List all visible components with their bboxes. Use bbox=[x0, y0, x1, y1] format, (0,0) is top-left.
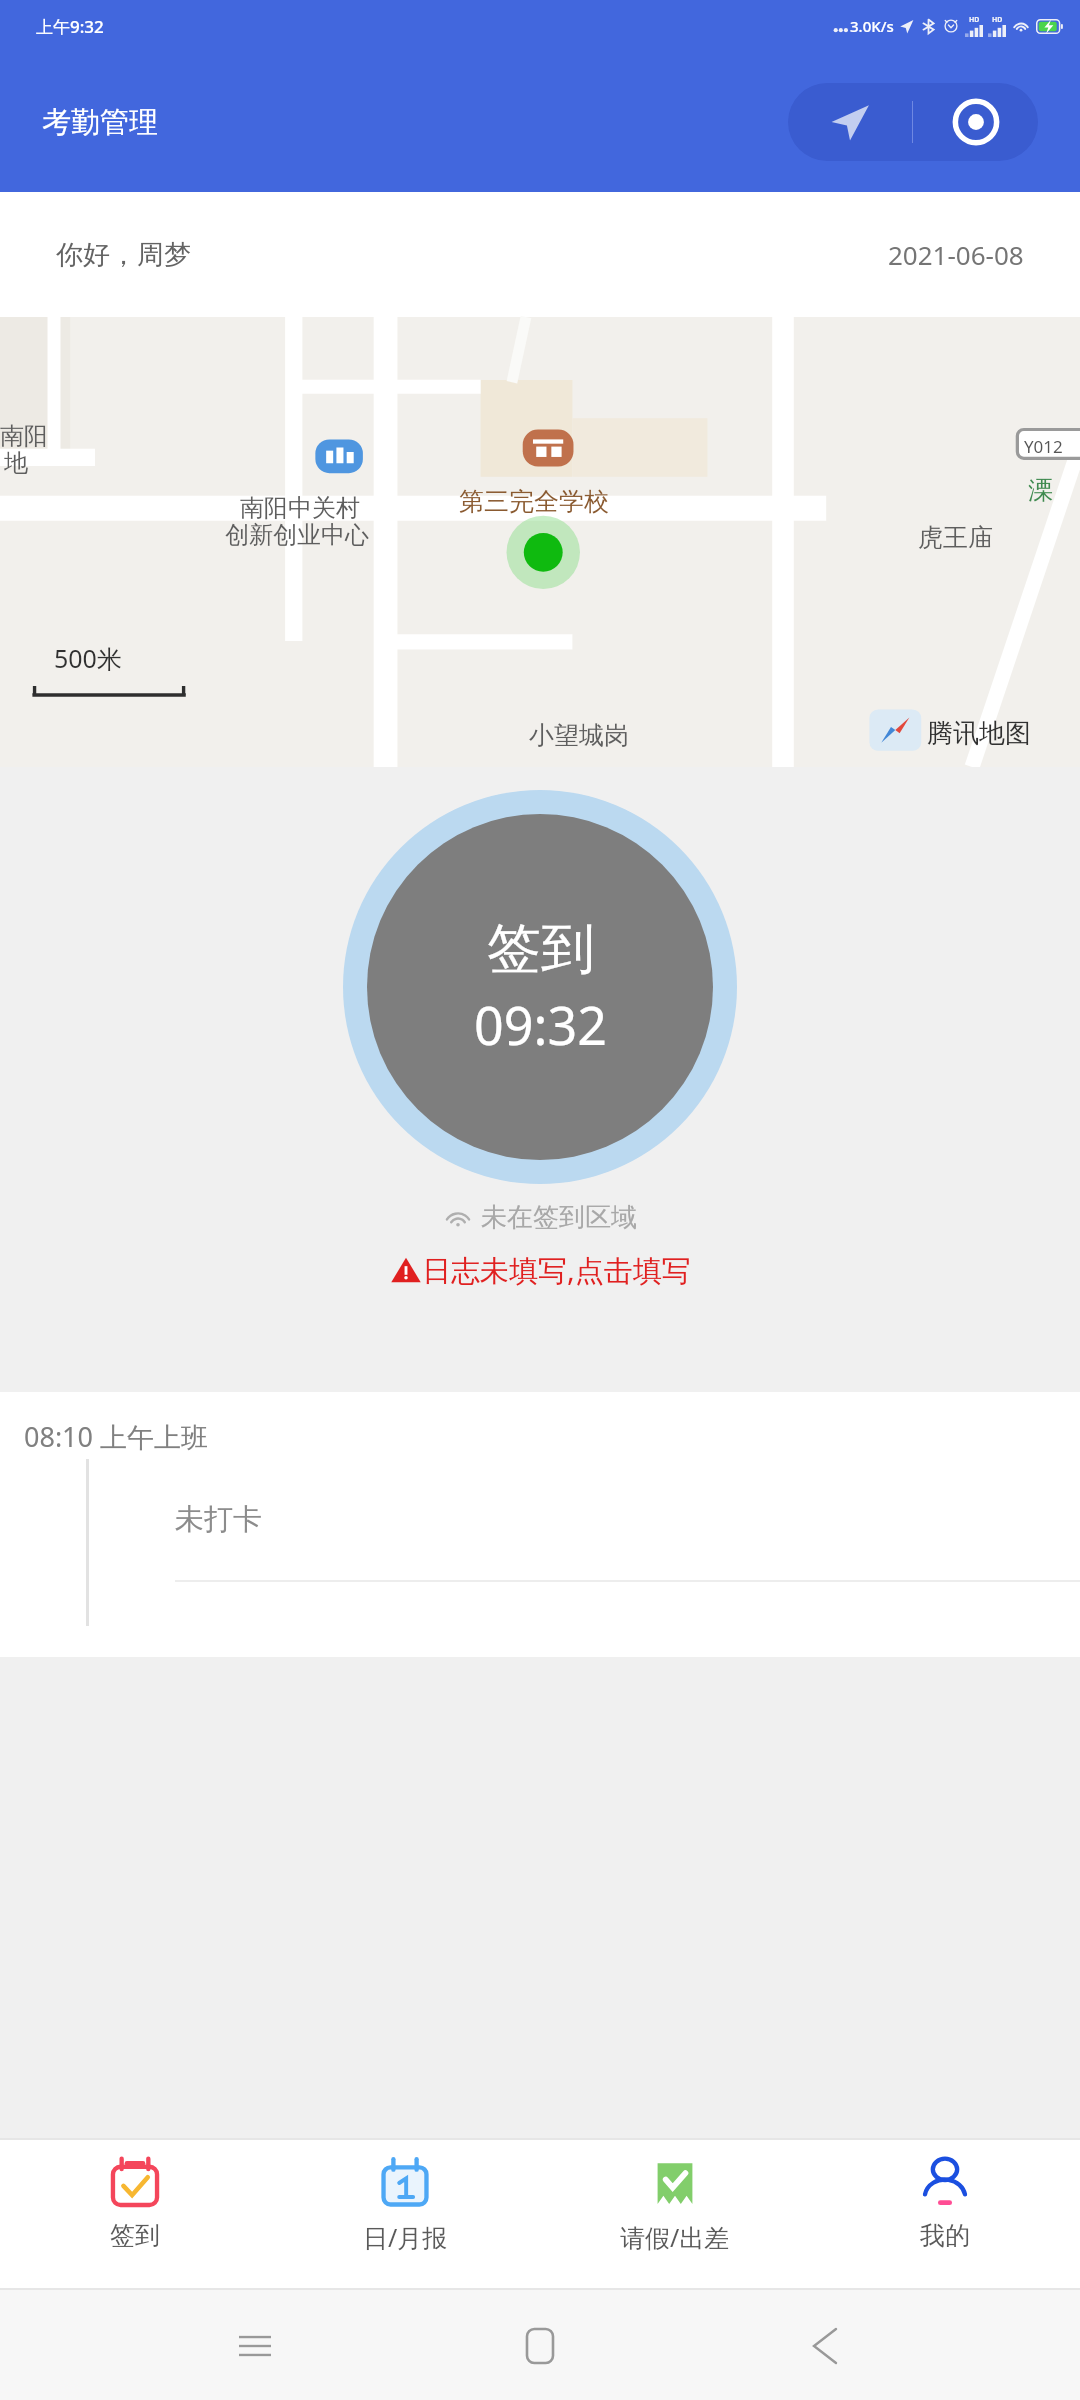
staticText: 第三完全学校 bbox=[459, 486, 609, 517]
staticText: 创新创业中心 bbox=[225, 520, 369, 550]
staticText: 签到 bbox=[487, 915, 595, 983]
staticText: 南阳中关村 bbox=[240, 493, 360, 523]
staticText: 上午9:32 bbox=[36, 15, 104, 38]
button[interactable]: Home bbox=[510, 2316, 570, 2376]
button[interactable]: 日志未填写,点击填写 bbox=[378, 1246, 703, 1294]
staticText: 08:10 上午上班 bbox=[24, 1418, 209, 1455]
staticText: 未打卡 bbox=[175, 1501, 262, 1538]
button[interactable]: Back bbox=[795, 2316, 855, 2376]
staticText: HD bbox=[969, 15, 980, 25]
staticText: 签到 bbox=[110, 2220, 160, 2251]
staticText: 日/月报 bbox=[363, 2220, 448, 2254]
staticText: 南阳 bbox=[0, 421, 48, 451]
staticText: 溧 bbox=[1028, 475, 1053, 506]
button[interactable]: Recents bbox=[225, 2316, 285, 2376]
button[interactable]: 我的 bbox=[810, 2140, 1080, 2288]
staticText: 小望城岗 bbox=[529, 720, 629, 751]
staticText: 地 bbox=[4, 448, 28, 478]
button[interactable]: 定位打卡 bbox=[913, 83, 1038, 161]
staticText: 3.0K/s bbox=[850, 16, 894, 36]
staticText: 你好，周梦 bbox=[56, 238, 191, 272]
staticText: 腾讯地图 bbox=[927, 717, 1031, 750]
staticText: 请假/出差 bbox=[620, 2220, 730, 2254]
staticText: 虎王庙 bbox=[918, 522, 993, 553]
staticText: HD bbox=[992, 15, 1003, 25]
staticText: 09:32 bbox=[474, 989, 607, 1060]
staticText: 2021-06-08 bbox=[888, 237, 1024, 272]
staticText: 日志未填写,点击填写 bbox=[422, 1250, 691, 1290]
staticText: 我的 bbox=[920, 2220, 970, 2251]
staticText: 考勤管理 bbox=[42, 104, 158, 141]
staticText: 未在签到区域 bbox=[481, 1201, 637, 1234]
button[interactable]: 请假/出差 bbox=[540, 2140, 810, 2288]
staticText: 500米 bbox=[54, 641, 122, 675]
button[interactable]: 定位 bbox=[788, 83, 912, 161]
button[interactable]: 签到 bbox=[340, 787, 740, 1187]
button[interactable]: 签到 bbox=[0, 2140, 270, 2288]
button[interactable]: 日/月报 bbox=[270, 2140, 540, 2288]
staticText: Y012 bbox=[1024, 435, 1063, 458]
